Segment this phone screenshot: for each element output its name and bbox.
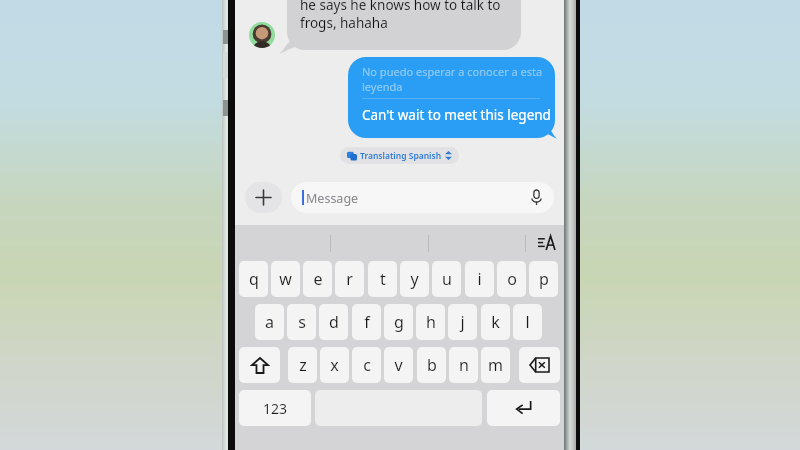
button[interactable]: t <box>368 261 397 297</box>
staticText: Message <box>306 190 359 207</box>
button[interactable]: o <box>497 261 526 297</box>
button[interactable]: r <box>335 261 364 297</box>
staticText: m <box>488 354 503 376</box>
staticText: No puedo esperar a conocer a esta leyend… <box>362 64 543 94</box>
staticText: u <box>442 268 452 290</box>
button[interactable]: a <box>255 304 284 340</box>
button[interactable]: v <box>384 347 413 383</box>
button[interactable]: x <box>320 347 349 383</box>
staticText: r <box>346 268 353 290</box>
staticText: j <box>460 311 465 333</box>
button[interactable]: b <box>417 347 446 383</box>
button[interactable]: q <box>239 261 268 297</box>
button[interactable]: z <box>288 347 317 383</box>
button[interactable]: Shift <box>239 347 280 383</box>
staticText: z <box>299 354 307 376</box>
staticText: b <box>427 354 437 376</box>
button[interactable]: he says he knows how to talk to frogs, h… <box>287 0 521 50</box>
staticText: w <box>279 268 292 290</box>
staticText: Can't wait to meet this legend <box>362 106 551 124</box>
staticText: 123 <box>263 399 288 418</box>
staticText: he says he knows how to talk to frogs, h… <box>300 0 501 32</box>
button[interactable]: h <box>416 304 445 340</box>
button[interactable]: s <box>287 304 316 340</box>
staticText: p <box>539 268 549 290</box>
staticText: k <box>491 311 500 333</box>
button[interactable]: n <box>449 347 478 383</box>
button[interactable]: k <box>481 304 510 340</box>
staticText: v <box>394 354 403 376</box>
staticText: o <box>507 268 517 290</box>
staticText: s <box>298 311 306 333</box>
button[interactable]: e <box>303 261 332 297</box>
staticText: n <box>459 354 469 376</box>
button[interactable]: m <box>481 347 510 383</box>
staticText: q <box>249 268 259 290</box>
staticText: Translating Spanish <box>360 150 442 162</box>
staticText: l <box>525 311 530 333</box>
staticText: g <box>394 311 404 333</box>
button[interactable]: c <box>352 347 381 383</box>
staticText: y <box>410 268 419 290</box>
staticText: a <box>265 311 274 333</box>
button[interactable]: d <box>319 304 348 340</box>
button[interactable]: u <box>432 261 461 297</box>
button[interactable]: 123 <box>239 390 311 426</box>
button[interactable]: i <box>465 261 494 297</box>
button[interactable]: Backspace <box>519 347 560 383</box>
button[interactable]: Message <box>291 182 554 213</box>
button[interactable]: j <box>448 304 477 340</box>
staticText: i <box>477 268 482 290</box>
button[interactable]: f <box>352 304 381 340</box>
staticText: c <box>363 354 371 376</box>
button[interactable]: Translating Spanish <box>340 147 459 164</box>
staticText: t <box>380 268 386 290</box>
staticText: h <box>426 311 436 333</box>
button[interactable]: Return <box>487 390 560 426</box>
staticText: e <box>313 268 323 290</box>
button[interactable]: Contact avatar <box>249 22 275 48</box>
staticText: d <box>329 311 339 333</box>
button[interactable]: No puedo esperar a conocer a esta leyend… <box>348 57 555 138</box>
button[interactable]: l <box>513 304 542 340</box>
button[interactable]: w <box>271 261 300 297</box>
button[interactable]: y <box>400 261 429 297</box>
button[interactable]: Formatting <box>534 232 558 254</box>
button[interactable]: g <box>384 304 413 340</box>
button[interactable]: p <box>529 261 558 297</box>
staticText: f <box>364 311 370 333</box>
staticText: x <box>330 354 339 376</box>
button[interactable]: Add attachment <box>245 182 282 213</box>
